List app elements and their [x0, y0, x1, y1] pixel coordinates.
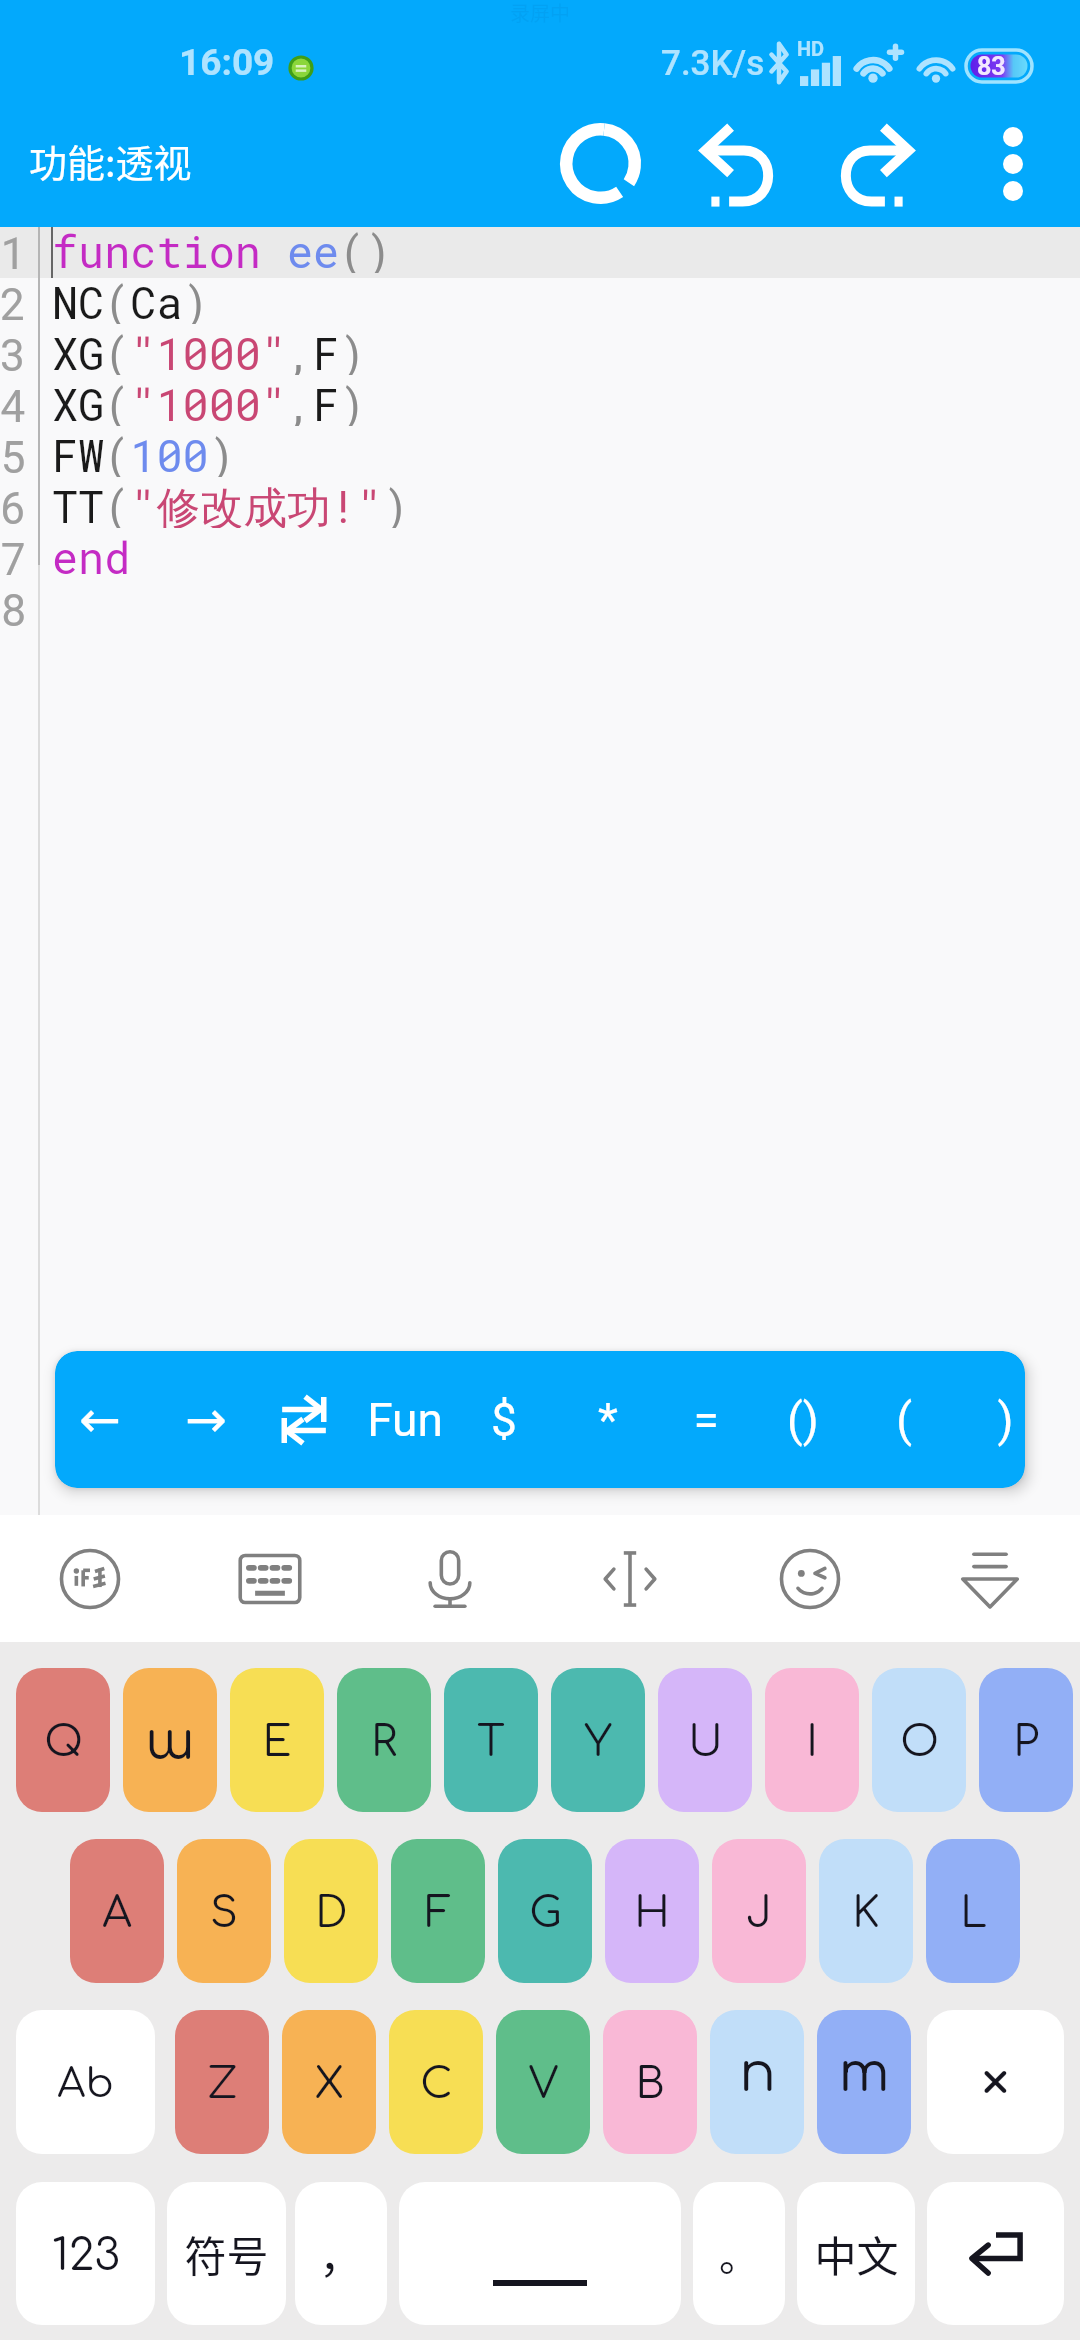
button[interactable]: Ab: [16, 2010, 155, 2154]
button[interactable]: Input method: [0, 1515, 180, 1642]
button[interactable]: Space: [399, 2182, 681, 2325]
staticText: I: [806, 1719, 818, 1766]
button[interactable]: Fun: [355, 1351, 455, 1488]
button[interactable]: Emoji: [720, 1515, 900, 1642]
button[interactable]: Q: [16, 1668, 110, 1812]
button[interactable]: =: [656, 1351, 756, 1488]
button[interactable]: R: [337, 1668, 431, 1812]
staticText: X: [314, 2061, 344, 2108]
staticText: 2: [0, 274, 25, 325]
staticText: 符号: [184, 2223, 269, 2284]
staticText: (): [787, 1393, 819, 1447]
button[interactable]: ，: [295, 2182, 387, 2325]
staticText: 7: [0, 529, 25, 580]
button[interactable]: 符号: [167, 2182, 286, 2325]
button[interactable]: 。: [693, 2182, 785, 2325]
staticText: L: [960, 1890, 987, 1937]
staticText: n: [739, 2043, 776, 2103]
staticText: XG("1000",F): [52, 375, 366, 426]
button[interactable]: Keyboard layout: [180, 1515, 360, 1642]
button[interactable]: ш: [123, 1668, 217, 1812]
staticText: H: [634, 1890, 670, 1937]
staticText: $: [491, 1393, 517, 1447]
staticText: 123: [52, 2231, 120, 2280]
staticText: ，: [319, 2222, 363, 2286]
button[interactable]: Redo: [806, 100, 946, 227]
staticText: Q: [44, 1719, 83, 1766]
button[interactable]: 中文: [797, 2182, 915, 2325]
staticText: 5: [0, 427, 25, 478]
button[interactable]: B: [603, 2010, 697, 2154]
staticText: 8: [0, 580, 25, 631]
button[interactable]: O: [872, 1668, 966, 1812]
button[interactable]: Enter: [927, 2182, 1064, 2325]
button[interactable]: *: [558, 1351, 658, 1488]
button[interactable]: m: [817, 2010, 911, 2154]
staticText: 3: [0, 325, 25, 376]
button[interactable]: L: [926, 1839, 1020, 1983]
button[interactable]: J: [712, 1839, 806, 1983]
staticText: R: [371, 1719, 397, 1766]
staticText: T: [477, 1719, 505, 1766]
staticText: B: [635, 2061, 665, 2108]
staticText: ш: [145, 1713, 195, 1771]
button[interactable]: More options: [946, 100, 1080, 227]
button[interactable]: Run: [530, 100, 670, 227]
staticText: ×: [982, 2053, 1009, 2115]
staticText: G: [529, 1890, 562, 1937]
staticText: K: [852, 1890, 880, 1937]
button[interactable]: U: [658, 1668, 752, 1812]
staticText: 功能:透视: [29, 133, 192, 188]
button[interactable]: $: [454, 1351, 554, 1488]
button[interactable]: T: [444, 1668, 538, 1812]
staticText: Ab: [57, 2062, 114, 2107]
button[interactable]: Move cursor left: [55, 1351, 150, 1488]
staticText: 1: [0, 223, 25, 274]
button[interactable]: I: [765, 1668, 859, 1812]
staticText: 6: [0, 478, 25, 529]
staticText: 7.3K/s: [661, 43, 765, 79]
staticText: ←: [79, 1391, 121, 1449]
button[interactable]: Tab: [254, 1351, 354, 1488]
button[interactable]: n: [710, 2010, 804, 2154]
staticText: function ee(): [52, 222, 392, 273]
staticText: V: [528, 2061, 559, 2108]
button[interactable]: Z: [175, 2010, 269, 2154]
staticText: 83: [977, 52, 1006, 81]
button[interactable]: X: [282, 2010, 376, 2154]
button[interactable]: ): [955, 1351, 1025, 1488]
staticText: O: [900, 1719, 939, 1766]
button[interactable]: H: [605, 1839, 699, 1983]
button[interactable]: Move cursor right: [156, 1351, 256, 1488]
staticText: C: [420, 2061, 453, 2108]
staticText: A: [102, 1890, 132, 1937]
button[interactable]: S: [177, 1839, 271, 1983]
staticText: U: [688, 1719, 723, 1766]
button[interactable]: (): [753, 1351, 853, 1488]
staticText: NC(Ca): [52, 273, 209, 324]
button[interactable]: ×: [927, 2010, 1064, 2154]
staticText: end: [52, 528, 131, 579]
button[interactable]: F: [391, 1839, 485, 1983]
button[interactable]: C: [389, 2010, 483, 2154]
button[interactable]: G: [498, 1839, 592, 1983]
button[interactable]: K: [819, 1839, 913, 1983]
button[interactable]: D: [284, 1839, 378, 1983]
button[interactable]: 123: [16, 2182, 155, 2325]
staticText: F: [425, 1890, 452, 1937]
button[interactable]: E: [230, 1668, 324, 1812]
staticText: →: [185, 1391, 227, 1449]
button[interactable]: Voice input: [360, 1515, 540, 1642]
button[interactable]: V: [496, 2010, 590, 2154]
button[interactable]: Hide keyboard: [900, 1515, 1080, 1642]
button[interactable]: A: [70, 1839, 164, 1983]
button[interactable]: P: [979, 1668, 1073, 1812]
button[interactable]: Undo: [668, 100, 808, 227]
button[interactable]: (: [854, 1351, 954, 1488]
staticText: Z: [207, 2061, 238, 2108]
staticText: 16:09: [179, 41, 275, 77]
staticText: 录屏中: [510, 0, 570, 27]
button[interactable]: Move cursor: [540, 1515, 720, 1642]
button[interactable]: Y: [551, 1668, 645, 1812]
staticText: E: [262, 1719, 292, 1766]
